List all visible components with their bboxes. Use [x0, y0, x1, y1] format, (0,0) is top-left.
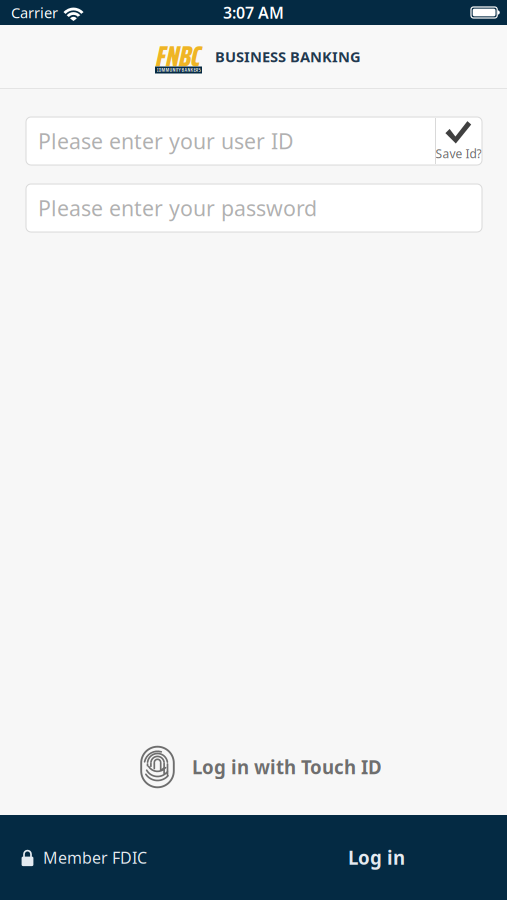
button[interactable]: Log in	[322, 815, 431, 900]
button[interactable]: Log in with Touch ID	[125, 741, 382, 793]
staticText: Carrier	[11, 3, 58, 22]
staticText: Log in	[348, 845, 405, 870]
staticText: FNBC	[156, 33, 201, 79]
button[interactable]: Save Id	[435, 118, 482, 164]
staticText: Member FDIC	[43, 847, 147, 868]
staticText: Log in with Touch ID	[192, 755, 382, 779]
staticText: Please enter your password	[38, 194, 317, 222]
staticText: Save Id?	[435, 145, 481, 161]
staticText: Please enter your user ID	[38, 127, 294, 155]
staticText: BUSINESS BANKING	[215, 47, 361, 66]
staticText: COMMUNITY BANKERS	[156, 66, 200, 74]
staticText: 3:07 AM	[223, 2, 284, 23]
